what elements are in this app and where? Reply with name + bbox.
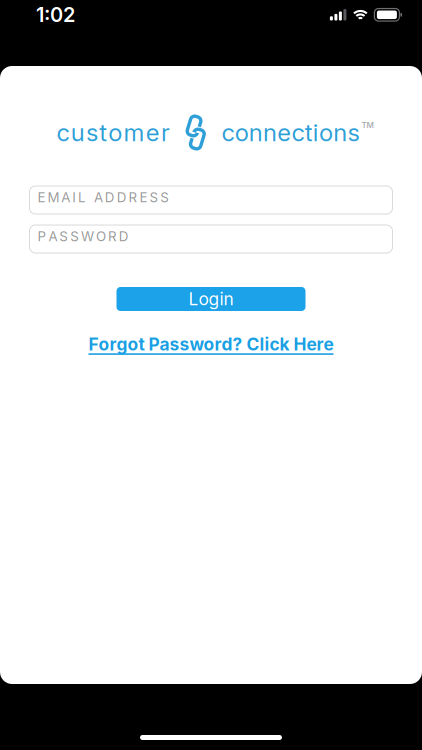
staticText: D <box>117 190 127 205</box>
staticText: o <box>108 118 122 147</box>
staticText: u <box>71 118 85 147</box>
staticText: TM <box>361 120 373 130</box>
staticText: R <box>108 229 117 244</box>
staticText: c <box>291 118 304 147</box>
staticText: c <box>57 118 70 147</box>
staticText: o <box>235 118 249 147</box>
staticText: Login <box>188 289 233 309</box>
staticText: S <box>59 229 68 244</box>
staticText: n <box>333 118 347 147</box>
staticText: O <box>96 229 106 244</box>
staticText: S <box>160 190 169 205</box>
staticText: e <box>146 118 160 147</box>
staticText: s <box>86 118 98 147</box>
staticText: o <box>319 118 333 147</box>
staticText: n <box>249 118 263 147</box>
button[interactable]: Login <box>116 287 305 311</box>
staticText: D <box>105 190 115 205</box>
button[interactable]: P <box>29 225 392 253</box>
staticText: A <box>61 190 70 205</box>
staticText: n <box>263 118 277 147</box>
staticText: t <box>305 118 313 147</box>
staticText: E <box>139 190 147 205</box>
staticText: W <box>81 229 94 244</box>
staticText: L <box>78 190 86 205</box>
staticText: r <box>161 118 170 147</box>
staticText: s <box>347 118 359 147</box>
staticText: S <box>149 190 158 205</box>
button[interactable]: Forgot Password? Click Here <box>88 334 333 354</box>
staticText: E <box>37 190 45 205</box>
staticText: A <box>94 190 103 205</box>
staticText: Forgot Password? Click Here <box>88 334 333 354</box>
staticText: i <box>313 118 319 147</box>
button[interactable]: E <box>29 186 392 214</box>
staticText: D <box>119 229 129 244</box>
staticText: M <box>47 190 59 205</box>
staticText: P <box>37 229 46 244</box>
staticText: R <box>129 190 138 205</box>
staticText: 1:02 <box>36 3 75 27</box>
staticText: A <box>48 229 57 244</box>
staticText: c <box>221 118 234 147</box>
staticText: I <box>72 190 76 205</box>
staticText: S <box>70 229 79 244</box>
staticText: m <box>124 118 145 147</box>
staticText: e <box>277 118 291 147</box>
staticText: t <box>99 118 107 147</box>
